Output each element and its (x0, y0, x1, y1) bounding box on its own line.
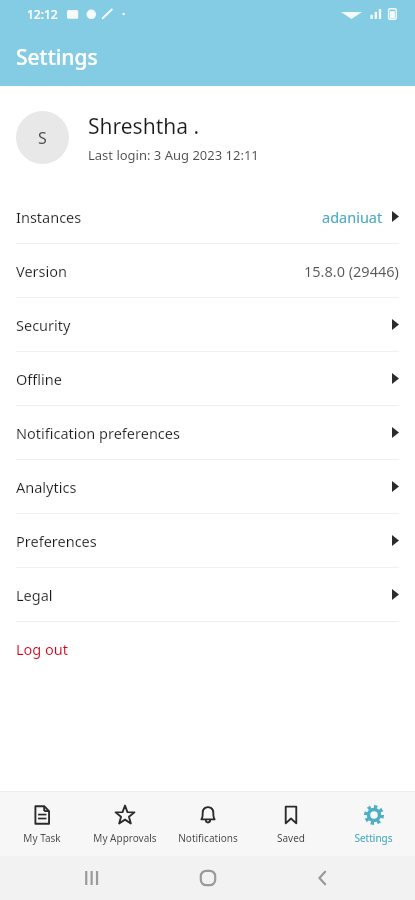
button[interactable]: Analytics (0, 460, 415, 513)
staticText: 15.8.0 (29446) (304, 261, 399, 281)
staticText: Notification preferences (16, 423, 180, 443)
staticText: Notifications (178, 831, 238, 845)
button[interactable]: Notifications (166, 792, 249, 856)
staticText: My Approvals (93, 831, 157, 845)
button[interactable]: Log out (0, 622, 415, 675)
staticText: Analytics (16, 477, 77, 497)
staticText: Legal (16, 585, 53, 605)
button[interactable]: Recents (69, 856, 115, 900)
staticText: Shreshtha . (88, 112, 200, 141)
button[interactable]: Preferences (0, 514, 415, 567)
staticText: Security (16, 315, 71, 335)
button[interactable]: Security (0, 298, 415, 351)
button[interactable]: Settings (332, 792, 415, 856)
staticText: Preferences (16, 531, 97, 551)
staticText: Log out (16, 639, 69, 659)
staticText: My Task (23, 831, 61, 845)
button[interactable]: S (0, 109, 415, 166)
staticText: Offline (16, 369, 62, 389)
button[interactable]: Back (300, 856, 346, 900)
staticText: S (38, 127, 47, 149)
button[interactable]: Saved (249, 792, 332, 856)
button[interactable]: My Approvals (83, 792, 166, 856)
button[interactable]: Instances (0, 190, 415, 243)
staticText: 12:12 (27, 6, 58, 22)
button[interactable]: My Task (0, 792, 83, 856)
staticText: Settings (354, 831, 393, 845)
button[interactable]: Home (185, 856, 231, 900)
staticText: Version (16, 261, 67, 281)
staticText: Settings (16, 43, 98, 72)
button[interactable]: Offline (0, 352, 415, 405)
staticText: Instances (16, 207, 82, 227)
button[interactable]: Legal (0, 568, 415, 621)
button[interactable]: Version (0, 244, 415, 297)
button[interactable]: Notification preferences (0, 406, 415, 459)
staticText: adaniuat (322, 207, 383, 227)
staticText: Saved (277, 831, 305, 845)
staticText: Last login: 3 Aug 2023 12:11 (88, 146, 259, 164)
